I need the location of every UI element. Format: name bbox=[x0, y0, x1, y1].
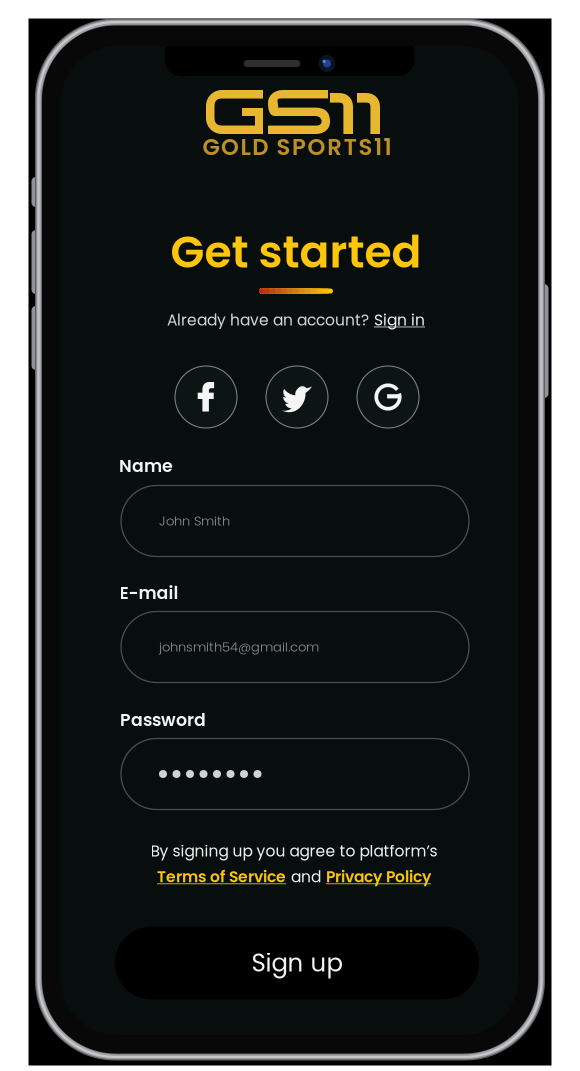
staticText: John Smith bbox=[159, 512, 230, 530]
staticText: Privacy Policy bbox=[326, 866, 431, 888]
staticText: By signing up you agree to platform’s bbox=[150, 840, 437, 862]
button[interactable]: Sign up with Google bbox=[357, 366, 419, 428]
button[interactable]: Sign up with Twitter bbox=[266, 366, 328, 428]
button[interactable]: Sign up bbox=[115, 926, 479, 999]
staticText: GOLD SPORTS11 bbox=[202, 131, 392, 163]
staticText: Get started bbox=[170, 221, 421, 283]
staticText: Password bbox=[120, 708, 206, 732]
button[interactable]: Sign up with Facebook bbox=[175, 366, 237, 428]
button[interactable]: Privacy Policy bbox=[326, 866, 431, 888]
button[interactable]: John Smith bbox=[121, 485, 469, 556]
staticText: and bbox=[291, 866, 321, 888]
button[interactable]: Sign in bbox=[374, 309, 425, 331]
staticText: E-mail bbox=[119, 581, 178, 605]
staticText: johnsmith54@gmail.com bbox=[159, 638, 319, 656]
staticText: Sign up bbox=[251, 946, 342, 980]
button[interactable]: Terms of Service bbox=[157, 866, 286, 888]
button[interactable] bbox=[121, 738, 469, 809]
staticText: Terms of Service bbox=[157, 866, 286, 888]
staticText: Sign in bbox=[374, 309, 425, 331]
staticText: Already have an account? bbox=[167, 309, 369, 331]
button[interactable]: johnsmith54@gmail.com bbox=[121, 611, 469, 682]
staticText: Name bbox=[119, 454, 173, 478]
